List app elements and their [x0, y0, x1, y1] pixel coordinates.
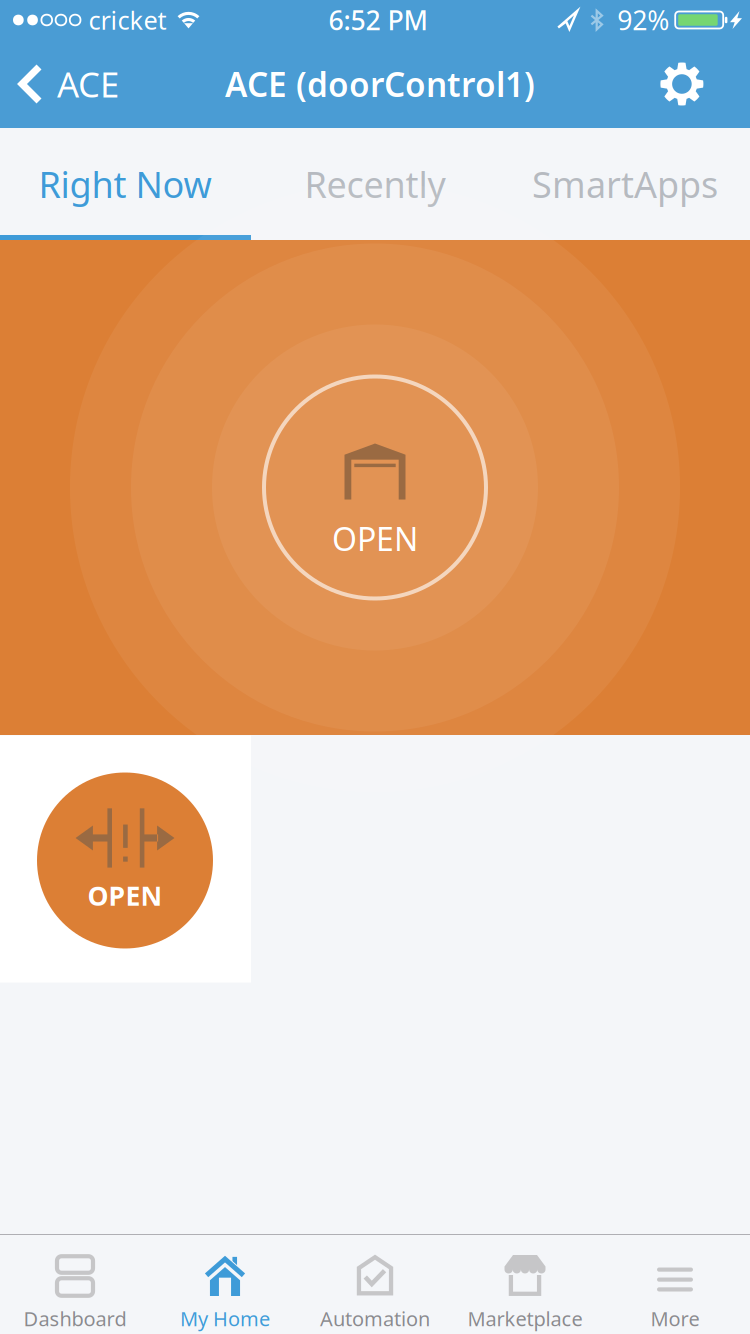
button[interactable]: OPEN	[0, 240, 750, 735]
button[interactable]: SmartApps	[500, 128, 750, 240]
button[interactable]: My Home	[150, 1235, 300, 1334]
staticText: More	[650, 1305, 699, 1332]
staticText: Dashboard	[23, 1305, 126, 1332]
staticText: ACE	[57, 61, 119, 107]
button[interactable]: More	[600, 1235, 750, 1334]
staticText: Right Now	[38, 160, 211, 208]
staticText: SmartApps	[532, 160, 718, 208]
staticText: My Home	[180, 1305, 270, 1332]
staticText: 92%	[617, 2, 669, 38]
button[interactable]: Settings	[630, 40, 750, 128]
staticText: 6:52 PM	[328, 2, 427, 38]
button[interactable]: Marketplace	[450, 1235, 600, 1334]
button[interactable]: Right Now	[0, 128, 250, 240]
button[interactable]: Dashboard	[0, 1235, 150, 1334]
staticText: Automation	[320, 1305, 430, 1332]
button[interactable]: Automation	[300, 1235, 450, 1334]
staticText: ACE (doorControl1)	[225, 62, 535, 106]
button[interactable]: Recently	[250, 128, 500, 240]
staticText: Recently	[304, 160, 445, 208]
staticText: OPEN	[332, 517, 418, 560]
staticText: cricket	[88, 3, 166, 37]
staticText: Marketplace	[467, 1305, 582, 1332]
button[interactable]: ACE	[0, 40, 135, 128]
staticText: OPEN	[87, 878, 162, 913]
button[interactable]: OPEN	[0, 735, 251, 982]
